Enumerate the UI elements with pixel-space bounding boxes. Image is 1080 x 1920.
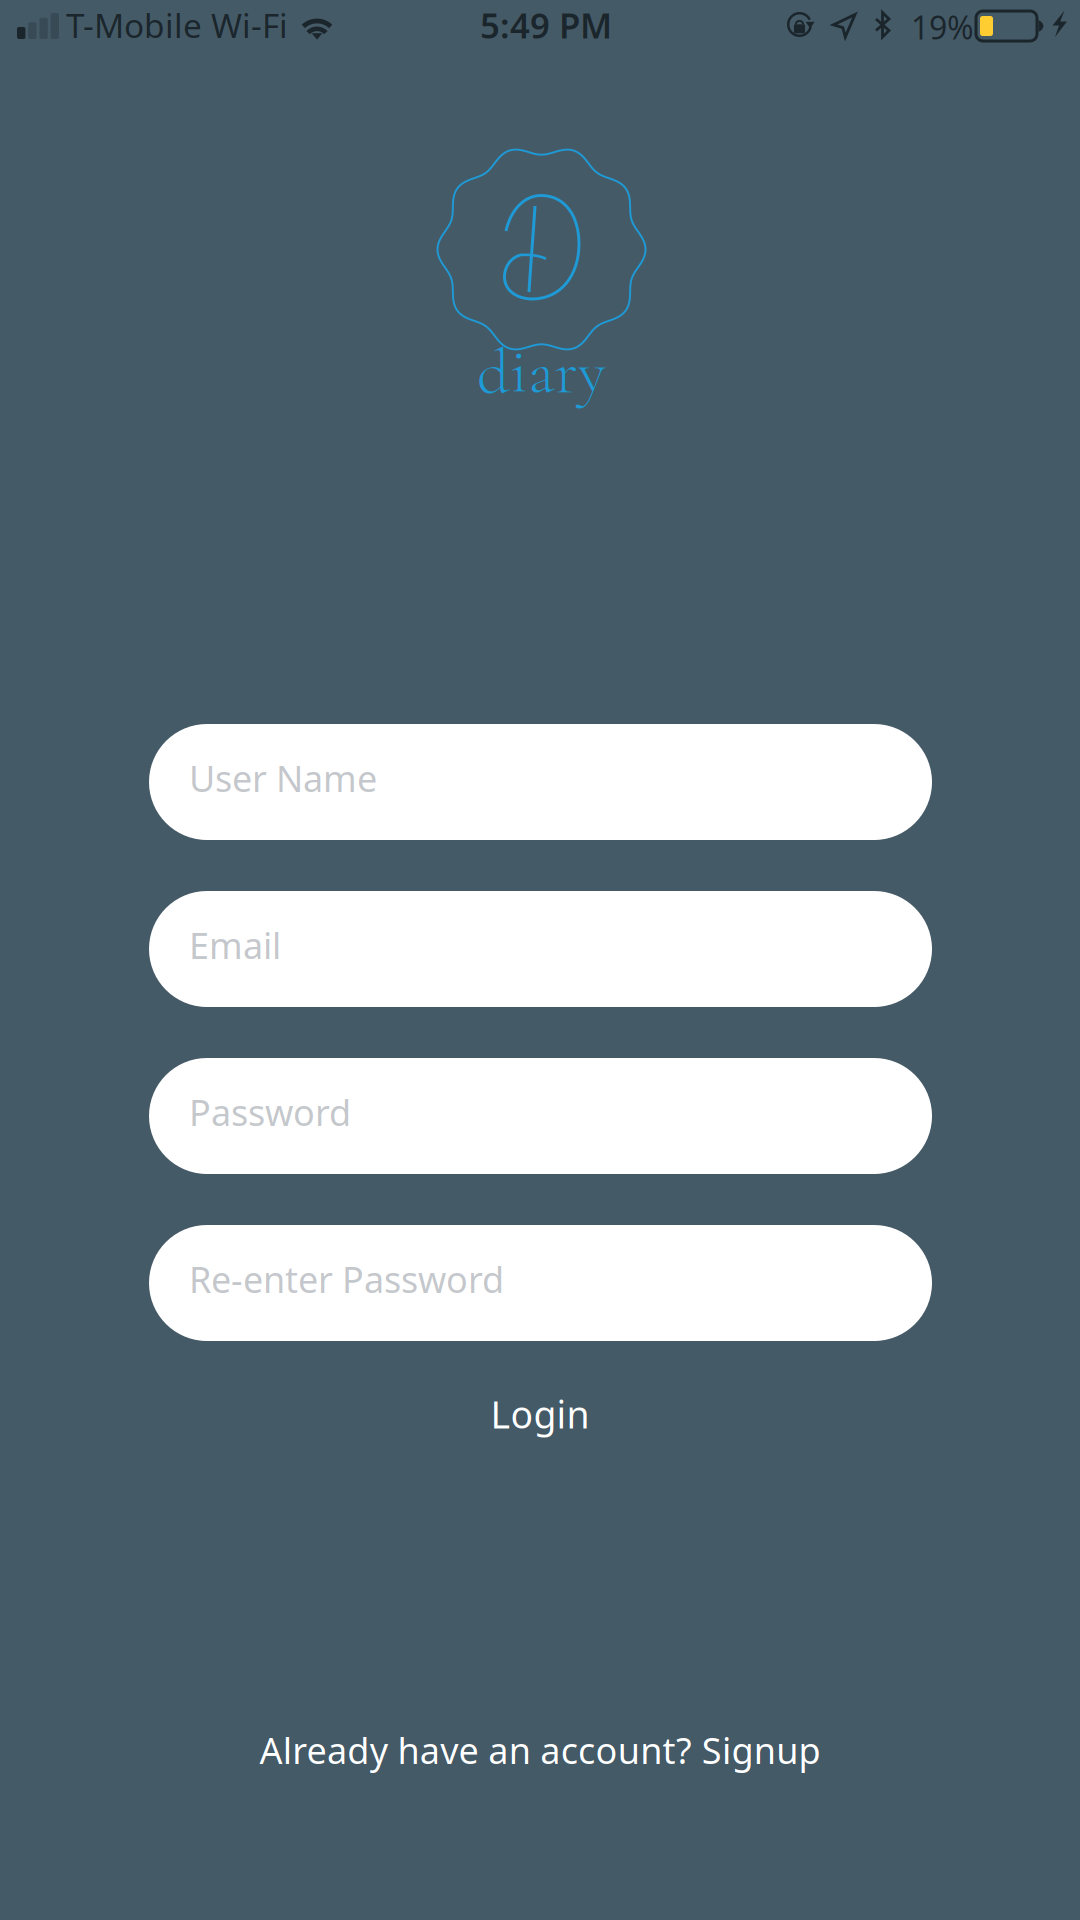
button[interactable]: Email: [149, 891, 932, 1007]
button[interactable]: User Name: [149, 724, 932, 840]
staticText: Email: [189, 921, 281, 969]
staticText: Password: [189, 1088, 351, 1136]
staticText: 5:49 PM: [480, 2, 612, 48]
button[interactable]: Password: [149, 1058, 932, 1174]
button[interactable]: Login: [410, 1379, 670, 1449]
staticText: Already have an account? Signup: [259, 1726, 820, 1774]
button[interactable]: Re-enter Password: [149, 1225, 932, 1341]
staticText: Re-enter Password: [189, 1255, 504, 1303]
staticText: Login: [490, 1389, 589, 1439]
staticText: diary: [477, 332, 606, 410]
staticText: 19%: [911, 6, 974, 48]
staticText: User Name: [189, 754, 377, 802]
staticText: T-Mobile Wi-Fi: [66, 3, 288, 47]
button[interactable]: Already have an account? Signup: [220, 1715, 860, 1785]
